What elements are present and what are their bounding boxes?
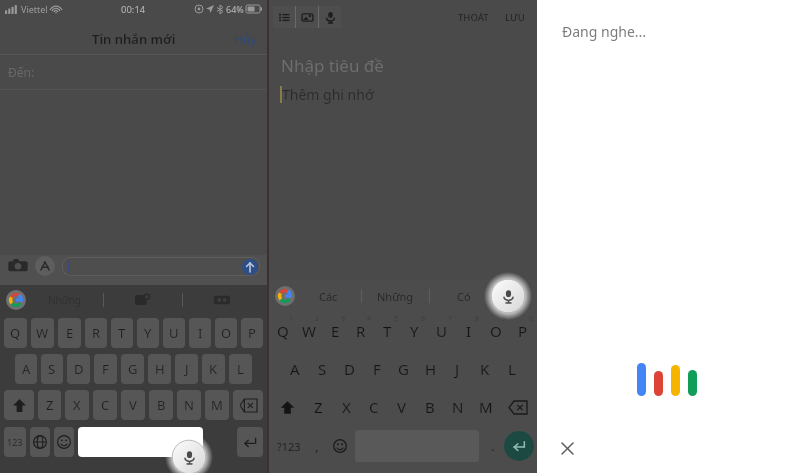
button[interactable]: Có <box>457 289 471 304</box>
button[interactable]: I <box>189 318 211 348</box>
button[interactable]: K <box>471 350 498 388</box>
staticText: C <box>101 396 110 414</box>
button[interactable] <box>30 427 50 457</box>
button[interactable]: N <box>444 388 472 426</box>
button[interactable]: T <box>111 318 133 348</box>
button[interactable]: N <box>177 390 201 420</box>
button[interactable]: P <box>241 318 263 348</box>
button[interactable]: B <box>149 390 173 420</box>
button[interactable]: Voice input <box>319 6 341 28</box>
staticText: K <box>209 360 218 378</box>
button[interactable]: O <box>215 318 237 348</box>
button[interactable]: G <box>390 350 417 388</box>
staticText: M <box>211 396 223 414</box>
button[interactable]: F <box>94 354 117 384</box>
button[interactable]: R <box>85 318 107 348</box>
button[interactable]: P <box>509 312 536 350</box>
button[interactable]: T <box>374 312 401 350</box>
button[interactable]: GIF <box>214 292 230 308</box>
button[interactable]: Close <box>556 437 578 459</box>
button[interactable]: R <box>348 312 374 350</box>
button[interactable]: M <box>205 390 229 420</box>
staticText: F <box>102 360 109 378</box>
button[interactable]: 123 <box>4 427 26 457</box>
button[interactable]: Backspace <box>500 388 536 426</box>
button[interactable]: Emoji <box>328 430 352 462</box>
staticText: S <box>318 359 327 379</box>
button[interactable]: Y <box>137 318 159 348</box>
staticText: 0 <box>529 314 534 324</box>
button[interactable]: H <box>148 354 171 384</box>
button[interactable]: Space <box>78 427 203 457</box>
button[interactable]: E <box>322 312 348 350</box>
button[interactable]: Image search <box>135 292 151 308</box>
button[interactable]: M <box>472 388 500 426</box>
button[interactable]: J <box>175 354 198 384</box>
button[interactable]: B <box>416 388 444 426</box>
button[interactable]: C <box>93 390 117 420</box>
button[interactable]: Q <box>4 318 27 348</box>
button[interactable]: Send <box>242 259 258 275</box>
button[interactable]: Google <box>6 290 26 310</box>
button[interactable]: S <box>41 354 63 384</box>
staticText: Tin nhắn mới <box>92 30 176 48</box>
button[interactable]: A <box>281 350 309 388</box>
button[interactable]: X <box>65 390 89 420</box>
button[interactable]: A <box>15 354 37 384</box>
button[interactable]: Send <box>62 257 260 276</box>
button[interactable]: L <box>498 350 525 388</box>
button[interactable]: J <box>444 350 471 388</box>
button[interactable]: Những <box>377 289 414 304</box>
button[interactable]: F <box>363 350 390 388</box>
button[interactable]: D <box>336 350 363 388</box>
button[interactable]: V <box>121 390 145 420</box>
button[interactable] <box>237 427 263 457</box>
button[interactable]: G <box>121 354 144 384</box>
button[interactable]: Các <box>319 289 338 304</box>
button[interactable]: Shift <box>270 388 305 426</box>
button[interactable]: App Store <box>35 256 55 276</box>
button[interactable]: E <box>58 318 81 348</box>
button[interactable]: U <box>428 312 455 350</box>
button[interactable]: S <box>309 350 336 388</box>
button[interactable]: I <box>455 312 482 350</box>
button[interactable]: Những <box>48 293 81 307</box>
button[interactable]: List <box>273 6 295 28</box>
button[interactable]: U <box>163 318 185 348</box>
staticText: 9 <box>502 314 507 324</box>
staticText: 8 <box>475 314 480 324</box>
staticText: 5 <box>394 314 399 324</box>
staticText: S <box>48 360 56 378</box>
button[interactable]: D <box>67 354 90 384</box>
button[interactable]: K <box>202 354 225 384</box>
button[interactable]: Camera <box>7 255 29 277</box>
button[interactable]: C <box>360 388 388 426</box>
staticText: Z <box>314 397 323 417</box>
button[interactable]: LƯU <box>501 11 529 24</box>
button[interactable]: THOÁT <box>454 11 493 24</box>
button[interactable]: W <box>31 318 54 348</box>
button[interactable] <box>4 390 34 420</box>
button[interactable] <box>233 390 263 420</box>
button[interactable]: Q <box>270 312 296 350</box>
button[interactable]: X <box>332 388 360 426</box>
button[interactable]: Google <box>275 286 295 306</box>
button[interactable]: V <box>388 388 416 426</box>
button[interactable]: Image <box>296 6 318 28</box>
button[interactable]: Y <box>401 312 428 350</box>
button[interactable]: Z <box>305 388 332 426</box>
button[interactable]: L <box>229 354 252 384</box>
button[interactable]: Enter <box>504 431 534 461</box>
button[interactable]: Hủy <box>234 31 257 47</box>
staticText: O <box>221 324 232 342</box>
button[interactable]: Z <box>38 390 61 420</box>
button[interactable]: O <box>482 312 509 350</box>
button[interactable]: W <box>296 312 322 350</box>
button[interactable]: ?123 <box>272 430 306 462</box>
button[interactable]: H <box>417 350 444 388</box>
button[interactable] <box>54 427 74 457</box>
